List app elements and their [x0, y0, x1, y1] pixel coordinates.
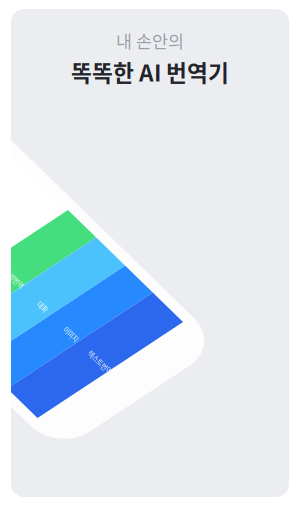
- staticText: 똑똑한 AI 번역기: [71, 55, 229, 88]
- staticText: 내 손안의: [116, 28, 184, 53]
- staticText: 텍스트번역: [85, 357, 115, 367]
- staticText: 음성번역: [2, 274, 26, 283]
- staticText: 이미지: [62, 329, 80, 339]
- staticText: 대화: [37, 302, 49, 311]
